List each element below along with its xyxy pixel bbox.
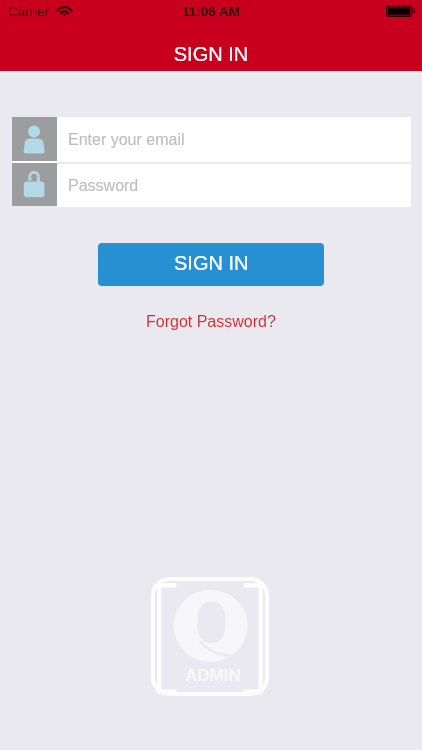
staticText: 11:06 AM (0, 4, 422, 19)
button[interactable]: SIGN IN (98, 243, 324, 286)
button[interactable]: Forgot Password? (136, 310, 286, 334)
staticText: SIGN IN (174, 252, 249, 274)
button[interactable]: Password (57, 164, 411, 207)
staticText: Password (68, 177, 139, 195)
staticText: Carrier (8, 4, 50, 19)
button[interactable]: User (12, 117, 57, 161)
staticText: Forgot Password? (146, 313, 276, 331)
staticText: Enter your email (68, 131, 185, 149)
button[interactable]: Password (12, 163, 57, 206)
staticText: SIGN IN (0, 43, 422, 65)
button[interactable]: Enter your email (57, 117, 411, 162)
staticText: ADMIN (185, 666, 241, 685)
